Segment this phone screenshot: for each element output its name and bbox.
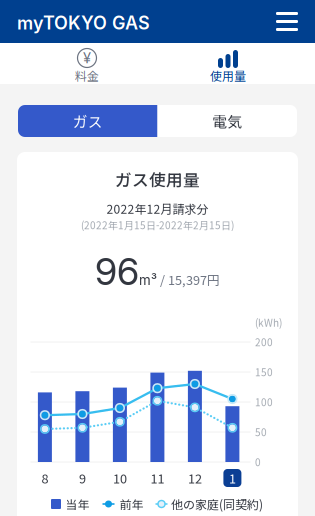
staticText: (2022年1月15日-2022年2月15日) [81, 218, 234, 232]
staticText: 0 [255, 455, 261, 469]
staticText: m³ [139, 272, 157, 288]
staticText: ガス [73, 110, 103, 132]
staticText: 96 [95, 249, 139, 294]
staticText: 2022年12月請求分 [106, 200, 208, 217]
button[interactable]: ¥ [17, 43, 157, 84]
staticText: 12 [188, 469, 202, 487]
staticText: 他の家庭(同契約) [171, 495, 263, 513]
staticText: 電気 [212, 110, 242, 132]
staticText: 使用量 [210, 67, 246, 84]
button[interactable]: 使用量 [158, 43, 298, 84]
staticText: 50 [255, 425, 267, 439]
staticText: 100 [255, 395, 273, 409]
staticText: 200 [255, 335, 273, 349]
staticText: ¥ [83, 49, 91, 67]
staticText: 11 [150, 469, 164, 487]
staticText: 9 [79, 469, 86, 487]
staticText: (kWh) [255, 315, 282, 330]
staticText: 10 [113, 469, 127, 487]
button[interactable]: 電気 [157, 105, 297, 137]
button[interactable]: ガス [18, 105, 157, 137]
staticText: 1 [229, 469, 236, 487]
staticText: 当年 [65, 495, 89, 513]
staticText: myTOKYO GAS [17, 12, 150, 34]
staticText: 前年 [119, 495, 143, 513]
button[interactable]: Menu [265, 0, 309, 43]
staticText: 料金 [75, 67, 99, 84]
staticText: / 15,397円 [157, 270, 220, 289]
staticText: ガス使用量 [115, 167, 200, 191]
staticText: 150 [255, 365, 273, 379]
staticText: 8 [41, 469, 48, 487]
